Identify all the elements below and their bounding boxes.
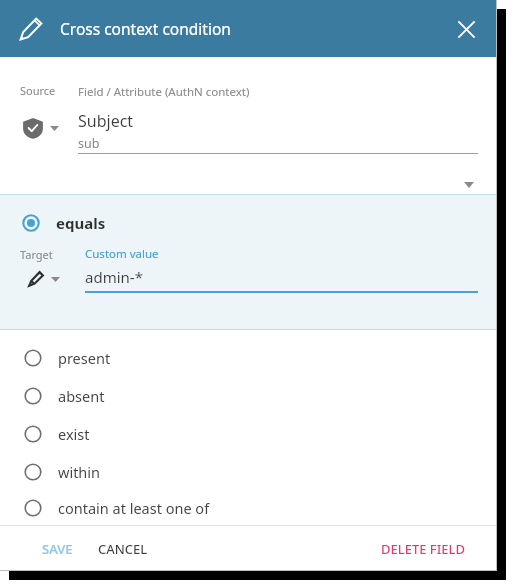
- button[interactable]: Close: [449, 12, 483, 46]
- button[interactable]: equals: [22, 210, 106, 236]
- staticText: Source: [20, 83, 56, 98]
- staticText: CANCEL: [98, 540, 148, 558]
- staticText: SAVE: [42, 540, 73, 558]
- button[interactable]: absent: [0, 377, 497, 415]
- staticText: contain at least one of: [58, 498, 210, 518]
- staticText: within: [58, 462, 101, 482]
- button[interactable]: within: [0, 453, 497, 491]
- staticText: present: [58, 348, 111, 368]
- staticText: Cross context condition: [60, 18, 231, 39]
- staticText: equals: [56, 213, 106, 233]
- staticText: Custom value: [85, 246, 159, 262]
- button[interactable]: contain at least one of: [0, 491, 497, 525]
- staticText: absent: [58, 386, 105, 406]
- button[interactable]: exist: [0, 415, 497, 453]
- button[interactable]: CANCEL: [90, 531, 156, 567]
- button[interactable]: SAVE: [34, 531, 81, 567]
- staticText: admin-*: [85, 267, 143, 287]
- button[interactable]: Edit: [15, 13, 47, 45]
- staticText: Target: [20, 247, 53, 262]
- button[interactable]: Source type: [22, 112, 72, 144]
- button[interactable]: present: [0, 339, 497, 377]
- staticText: sub: [78, 135, 100, 152]
- staticText: Field / Attribute (AuthN context): [78, 84, 250, 100]
- staticText: exist: [58, 424, 90, 444]
- button[interactable]: DELETE FIELD: [373, 531, 474, 567]
- staticText: Subject: [78, 110, 134, 132]
- button[interactable]: Target type: [27, 265, 75, 293]
- staticText: DELETE FIELD: [381, 540, 466, 558]
- button[interactable]: Expand field: [455, 171, 483, 199]
